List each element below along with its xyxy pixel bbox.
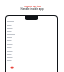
staticText: Search for the: [24, 4, 41, 7]
staticText: Handle inside app: [20, 7, 44, 11]
